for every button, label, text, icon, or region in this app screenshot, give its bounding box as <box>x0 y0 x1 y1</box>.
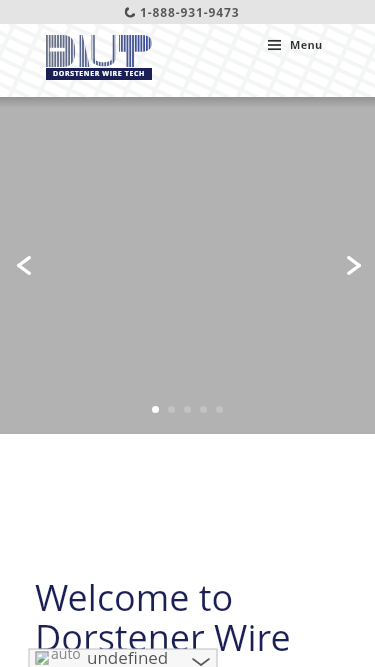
button[interactable]: 1-888-931-9473 <box>121 4 244 20</box>
staticText: Menu <box>290 37 323 52</box>
button[interactable]: Go to slide 2 <box>168 406 175 413</box>
button[interactable]: Go to slide 1 <box>152 406 159 413</box>
button[interactable]: Go to slide 5 <box>216 406 223 413</box>
staticText: Welcome to Dorstener Wire <box>35 573 291 661</box>
button[interactable]: Next slide <box>335 247 372 284</box>
button[interactable]: Go to slide 4 <box>200 406 207 413</box>
staticText: 1-888-931-9473 <box>140 4 240 20</box>
staticText: DORSTENER WIRE TECH <box>53 69 145 79</box>
staticText: auto <box>51 644 81 663</box>
button[interactable]: Previous slide <box>5 247 42 284</box>
button[interactable]: Menu <box>260 30 331 59</box>
staticText: undefined <box>87 646 169 666</box>
button[interactable]: Go to slide 3 <box>184 406 191 413</box>
button[interactable]: Select language <box>29 649 217 667</box>
